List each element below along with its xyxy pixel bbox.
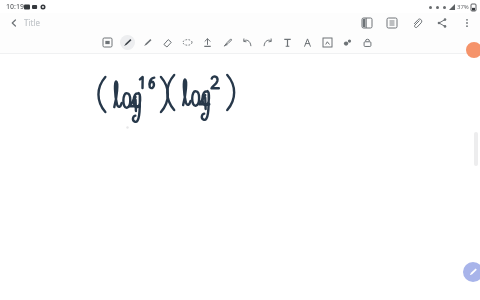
button[interactable]: Lock [360,35,375,50]
staticText: 10:19 [6,2,24,12]
button[interactable]: Redo [260,35,275,50]
button[interactable]: Split view [359,15,375,31]
button[interactable]: Text [280,35,295,50]
button[interactable]: Attach [409,15,425,31]
button[interactable]: Edit [463,262,480,282]
button[interactable]: Undo [240,35,255,50]
other: Collaborator [466,42,480,58]
button[interactable]: More options [459,15,475,31]
staticText: 37% [457,3,469,11]
button[interactable]: Insert [100,35,115,50]
button[interactable]: Pen [120,35,135,50]
button[interactable]: Back [4,15,24,31]
button[interactable]: Eraser [160,35,175,50]
button[interactable]: Fill [200,35,215,50]
button[interactable]: Lasso [180,35,195,50]
button[interactable]: Font [300,35,315,50]
button[interactable]: Brush [220,35,235,50]
button[interactable]: Image [320,35,335,50]
button[interactable]: Title [24,17,40,28]
button[interactable]: Notes [384,15,400,31]
button[interactable]: Shapes [340,35,355,50]
button[interactable]: Pencil [140,35,155,50]
button[interactable]: Share [434,15,450,31]
